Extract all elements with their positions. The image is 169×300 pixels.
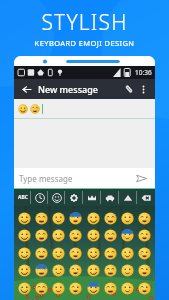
button[interactable]: Emoji 0	[17, 211, 32, 226]
button[interactable]: Emoji 34	[51, 281, 66, 296]
button[interactable]: Send	[133, 170, 150, 187]
button[interactable]: Emoji 7	[137, 211, 152, 226]
button[interactable]: Emoji 26	[51, 263, 66, 278]
button[interactable]: Emoji 15	[137, 228, 152, 243]
button[interactable]: Emoji 4	[86, 211, 101, 226]
button[interactable]: Emoji 18	[51, 246, 66, 261]
button[interactable]: Emoji 22	[120, 246, 135, 261]
button[interactable]: Emoji 28	[86, 263, 101, 278]
button[interactable]: Emoji 16	[17, 246, 32, 261]
button[interactable]: Recent	[31, 189, 48, 206]
button[interactable]: Emoji 32	[17, 281, 32, 296]
button[interactable]: ABC	[14, 189, 31, 206]
button[interactable]: Emoji 31	[137, 263, 152, 278]
button[interactable]: Emoji 38	[120, 281, 135, 296]
button[interactable]: Emoji 27	[68, 263, 83, 278]
button[interactable]: Emoji 6	[120, 211, 135, 226]
button[interactable]: Emoji 25	[34, 263, 49, 278]
button[interactable]: Emoji 10	[51, 228, 66, 243]
button[interactable]: Emoji 9	[34, 228, 49, 243]
button[interactable]: Travel	[101, 189, 119, 206]
button[interactable]: Flags	[119, 189, 137, 206]
button[interactable]: Emoji 3	[68, 211, 83, 226]
button[interactable]: Smileys	[48, 189, 65, 206]
button[interactable]: Emoji 2	[51, 211, 66, 226]
button[interactable]: Emoji 36	[86, 281, 101, 296]
button[interactable]: Back	[19, 82, 34, 97]
button[interactable]: Emoji 21	[103, 246, 118, 261]
button[interactable]: Emoji 24	[17, 263, 32, 278]
button[interactable]: Emoji 35	[68, 281, 83, 296]
staticText: KEYBOARD EMOJI DESIGN	[0, 38, 169, 48]
staticText: STYLISH	[0, 8, 169, 37]
button[interactable]: Emoji 20	[86, 246, 101, 261]
button[interactable]: Emoji 14	[120, 228, 135, 243]
button[interactable]: Emoji 33	[34, 281, 49, 296]
button[interactable]: Emoji 11	[68, 228, 83, 243]
staticText: ABC	[18, 194, 28, 201]
button[interactable]: Emoji 19	[68, 246, 83, 261]
button[interactable]: Emoji 23	[137, 246, 152, 261]
button[interactable]: Nature	[65, 189, 83, 206]
button[interactable]: Emoji 8	[17, 228, 32, 243]
staticText: Type message	[19, 173, 73, 184]
button[interactable]: Emoji 39	[137, 281, 152, 296]
button[interactable]: Food	[83, 189, 101, 206]
button[interactable]: Attach	[121, 81, 137, 97]
button[interactable]: Emoji 13	[103, 228, 118, 243]
staticText: New message	[38, 83, 98, 95]
button[interactable]: Emoji 17	[34, 246, 49, 261]
button[interactable]: Emoji 12	[86, 228, 101, 243]
button[interactable]: Backspace	[137, 189, 155, 206]
button[interactable]: More options	[137, 83, 150, 96]
button[interactable]: Emoji 1	[34, 211, 49, 226]
staticText: 10:36	[135, 68, 152, 77]
button[interactable]: Emoji 5	[103, 211, 118, 226]
button[interactable]: Emoji 37	[103, 281, 118, 296]
button[interactable]: Type message	[19, 173, 133, 184]
button[interactable]: Emoji 30	[120, 263, 135, 278]
button[interactable]: Emoji 29	[103, 263, 118, 278]
